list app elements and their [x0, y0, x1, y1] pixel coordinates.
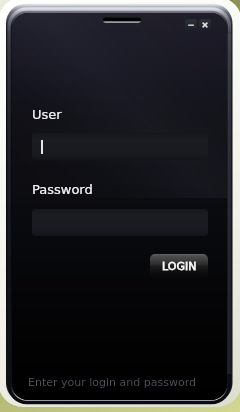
button[interactable]: LOGIN	[150, 254, 208, 278]
button[interactable]: Minimize	[185, 19, 197, 31]
button[interactable]	[32, 133, 208, 160]
button[interactable]: Close	[199, 19, 211, 31]
staticText: Password	[32, 182, 93, 197]
staticText: Enter your login and password	[28, 376, 196, 389]
staticText: LOGIN	[162, 260, 197, 273]
staticText: User	[32, 107, 62, 122]
